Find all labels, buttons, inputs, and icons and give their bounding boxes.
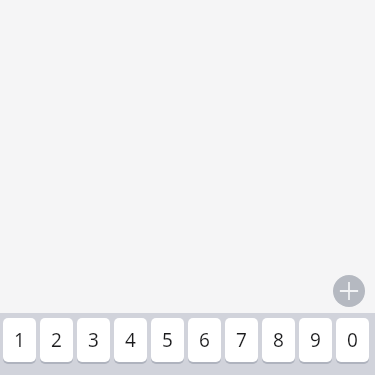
staticText: 6 <box>199 327 210 353</box>
staticText: 4 <box>125 327 136 353</box>
staticText: 8 <box>273 327 284 353</box>
staticText: 0 <box>347 327 358 353</box>
button[interactable]: 8 <box>262 318 295 367</box>
button[interactable]: 5 <box>151 318 184 367</box>
button[interactable]: 4 <box>114 318 147 367</box>
button[interactable]: 3 <box>77 318 110 367</box>
staticText: 7 <box>236 327 247 353</box>
button[interactable]: 9 <box>299 318 332 367</box>
button[interactable]: Add <box>333 275 365 307</box>
button[interactable]: 1 <box>3 318 36 367</box>
staticText: 1 <box>14 327 25 353</box>
staticText: 2 <box>51 327 62 353</box>
button[interactable]: 2 <box>40 318 73 367</box>
staticText: 9 <box>310 327 321 353</box>
button[interactable]: 6 <box>188 318 221 367</box>
button[interactable]: 0 <box>336 318 369 367</box>
staticText: 5 <box>162 327 173 353</box>
staticText: 3 <box>88 327 99 353</box>
button[interactable]: 7 <box>225 318 258 367</box>
